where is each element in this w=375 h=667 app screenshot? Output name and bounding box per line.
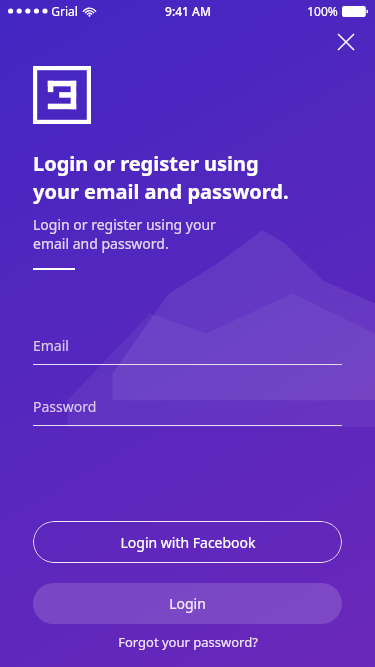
button[interactable]: Close [325, 21, 367, 63]
button[interactable]: Forgot your password? [33, 633, 342, 651]
staticText: Login [169, 594, 206, 613]
staticText: Grial [51, 3, 78, 19]
staticText: Email [33, 336, 69, 355]
staticText: Forgot your password? [118, 633, 258, 651]
staticText: Login or register using your email and p… [33, 150, 289, 205]
staticText: 9:41 AM [165, 3, 211, 19]
staticText: Login with Facebook [120, 533, 256, 552]
staticText: Password [33, 397, 97, 416]
button[interactable]: Email [33, 336, 342, 365]
button[interactable]: Login [33, 583, 342, 624]
button[interactable]: Login with Facebook [33, 521, 342, 563]
staticText: Login or register using your email and p… [33, 215, 216, 253]
button[interactable]: Password [33, 397, 342, 426]
staticText: 100% [307, 3, 338, 19]
